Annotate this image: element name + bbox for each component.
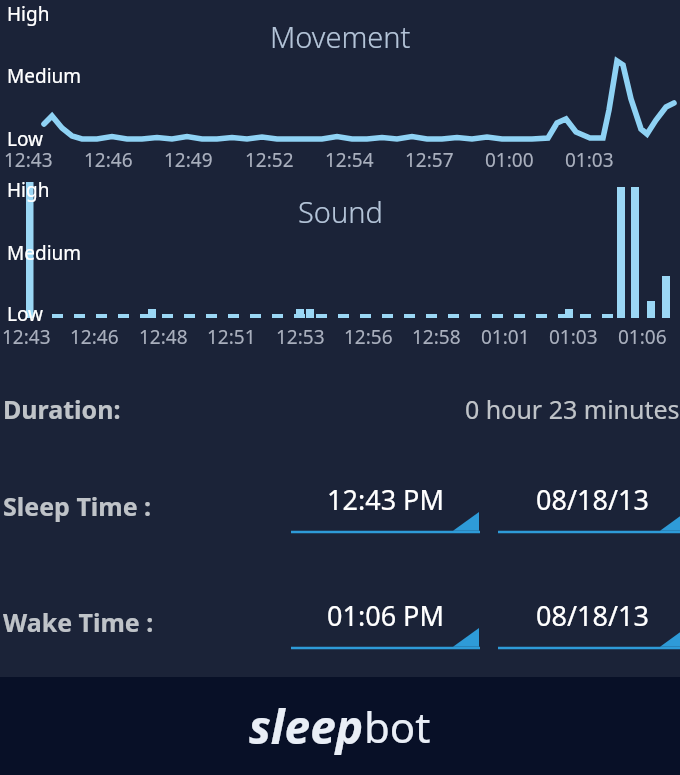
staticText: 12:49 (164, 147, 213, 173)
staticText: 08/18/13 (536, 597, 649, 634)
staticText: 12:52 (245, 147, 294, 173)
staticText: 12:51 (207, 324, 256, 350)
button[interactable]: Sleepbot (0, 677, 680, 775)
staticText: Medium (7, 63, 82, 89)
staticText: 12:43 (4, 147, 53, 173)
staticText: 01:01 (481, 324, 530, 350)
staticText: 01:06 (618, 324, 667, 350)
staticText: Low (7, 126, 44, 152)
button[interactable]: Sound chart (0, 170, 680, 345)
staticText: Low (7, 301, 44, 327)
staticText: Movement (270, 17, 411, 56)
staticText: 01:03 (549, 324, 598, 350)
button[interactable]: 08/18/13 (498, 478, 680, 538)
staticText: 0 hour 23 minutes (465, 392, 680, 426)
staticText: 01:06 PM (327, 597, 444, 634)
staticText: sleep (249, 695, 364, 758)
staticText: High (7, 1, 50, 27)
button[interactable]: 12:43 PM (291, 478, 480, 538)
staticText: 12:56 (344, 324, 393, 350)
button[interactable]: 08/18/13 (498, 594, 680, 654)
button[interactable]: Sleep Time : (3, 489, 152, 523)
button[interactable]: 01:06 PM (291, 594, 480, 654)
staticText: bot (364, 698, 431, 755)
staticText: 12:53 (276, 324, 325, 350)
staticText: Wake Time : (3, 605, 154, 639)
button[interactable]: Duration: (0, 382, 680, 438)
staticText: Medium (7, 240, 82, 266)
staticText: Sleep Time : (3, 489, 152, 523)
staticText: 01:03 (565, 147, 614, 173)
staticText: 12:58 (412, 324, 461, 350)
staticText: Sound (298, 192, 383, 231)
staticText: 12:48 (139, 324, 188, 350)
staticText: 12:43 (2, 324, 51, 350)
button[interactable]: Wake Time : (3, 605, 154, 639)
staticText: 12:57 (405, 147, 454, 173)
staticText: 12:46 (70, 324, 119, 350)
staticText: 12:54 (325, 147, 374, 173)
staticText: High (7, 177, 50, 203)
staticText: 12:43 PM (327, 481, 444, 518)
button[interactable]: Movement chart (0, 0, 680, 170)
staticText: 08/18/13 (536, 481, 649, 518)
staticText: Duration: (3, 392, 121, 426)
staticText: 12:46 (84, 147, 133, 173)
staticText: 01:00 (485, 147, 534, 173)
